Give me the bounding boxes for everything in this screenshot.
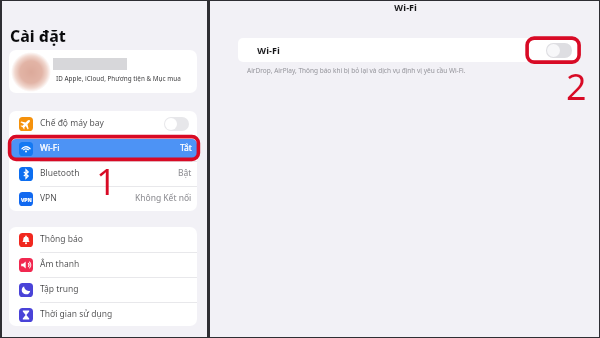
button[interactable]: Chế độ máy bay (9, 111, 197, 136)
staticText: ID Apple, iCloud, Phương tiện & Mục mua (56, 74, 181, 83)
button[interactable]: Bật tắt (164, 117, 189, 131)
staticText: Âm thanh (40, 258, 80, 270)
staticText: Thời gian sử dụng (40, 308, 113, 320)
button[interactable]: Tập trung (9, 277, 197, 302)
button[interactable]: Thời gian sử dụng (9, 302, 197, 326)
staticText: VPN (40, 192, 57, 204)
staticText: Tắt (180, 142, 192, 154)
button[interactable]: ID Apple, iCloud, Phương tiện & Mục mua (9, 50, 197, 93)
staticText: Cài đặt (10, 25, 66, 47)
button[interactable]: Wi-Fi (238, 38, 580, 62)
button[interactable]: Thông báo (9, 227, 197, 252)
button[interactable]: Âm thanh (9, 252, 197, 277)
button[interactable]: Wi-Fi (9, 136, 197, 161)
staticText: Bật (178, 167, 192, 179)
staticText: AirDrop, AirPlay, Thông báo khi bị bỏ lạ… (247, 66, 466, 75)
staticText: Thông báo (40, 233, 83, 245)
staticText: Chế độ máy bay (40, 117, 104, 129)
staticText: Wi-Fi (40, 142, 60, 154)
staticText: Wi-Fi (257, 44, 280, 57)
staticText: 2 (566, 62, 587, 111)
staticText: Không Kết nối (135, 192, 192, 204)
staticText: Tập trung (40, 283, 79, 295)
staticText: Bluetooth (40, 167, 80, 179)
staticText: VPN (21, 196, 32, 203)
staticText: Wi-Fi (211, 1, 600, 14)
button[interactable]: Bluetooth (9, 161, 197, 186)
button[interactable]: Bật tắt Wi-Fi (546, 43, 572, 58)
staticText: 1 (96, 157, 117, 206)
button[interactable]: VPN (9, 186, 197, 211)
